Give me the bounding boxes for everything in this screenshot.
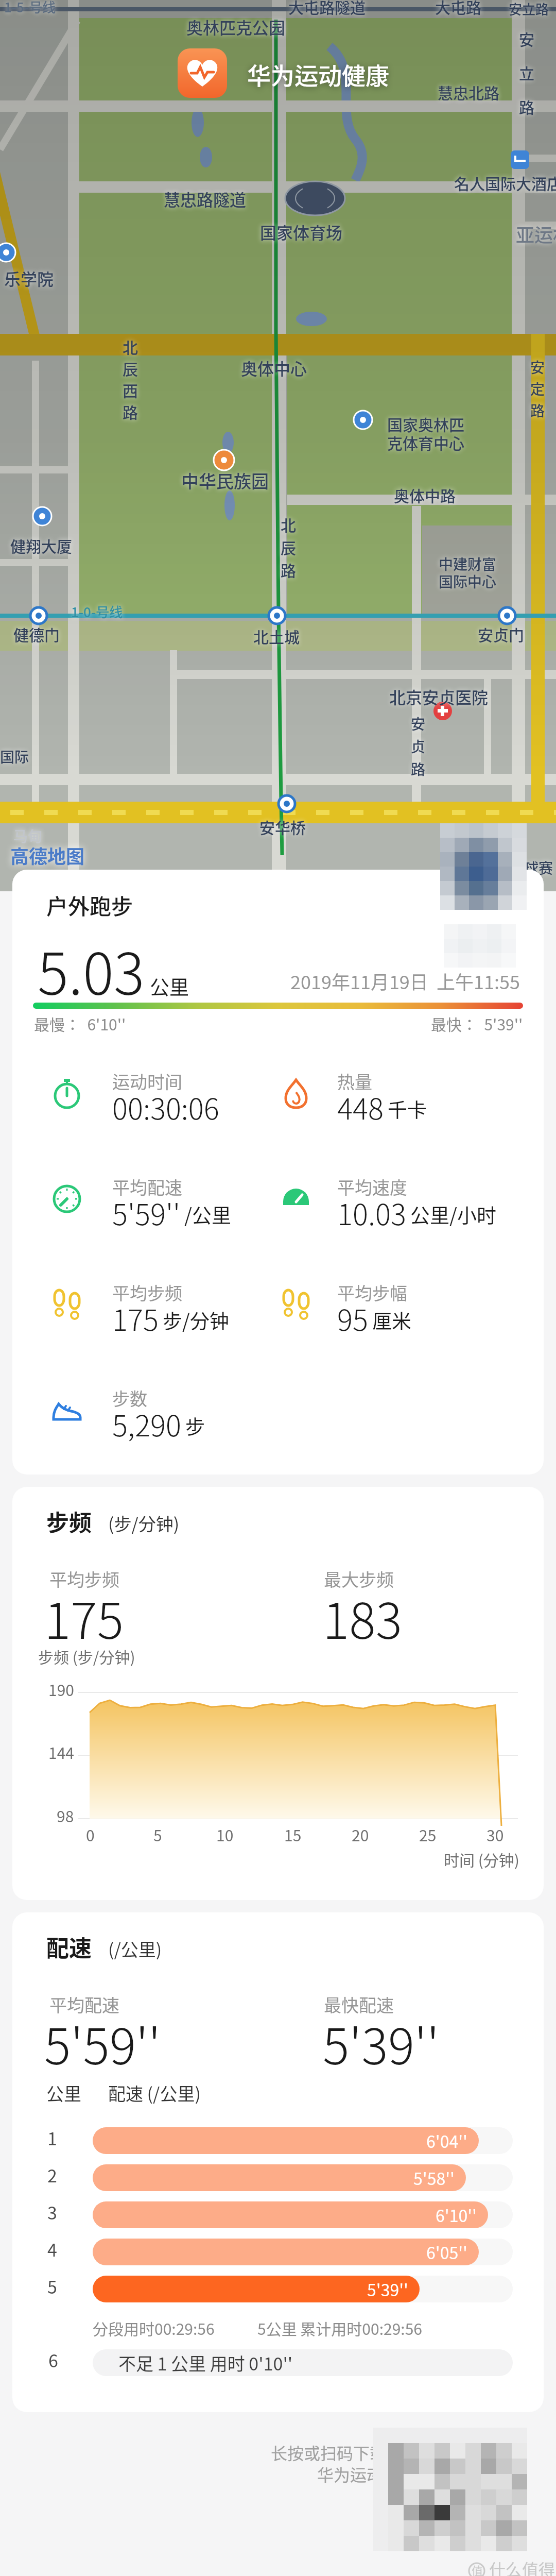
staticText: 平均步频	[112, 1280, 182, 1305]
staticText: 北	[281, 513, 296, 535]
staticText: 144	[48, 1741, 74, 1763]
staticText: 步频 (步/分钟)	[38, 1645, 135, 1667]
button[interactable]	[440, 823, 527, 910]
staticText: 最慢： 6'10''	[34, 1012, 126, 1035]
staticText: 4	[47, 2236, 57, 2262]
staticText: 名人国际大酒店	[454, 172, 556, 194]
staticText: 安立路	[509, 0, 549, 19]
staticText: 球赛	[524, 857, 553, 878]
staticText: 6'04''	[426, 2129, 467, 2153]
staticText: 平均步频	[49, 1566, 119, 1591]
staticText: 安	[411, 713, 426, 734]
staticText: (/公里)	[108, 1936, 162, 1961]
staticText: 448	[337, 1086, 384, 1128]
staticText: 中建财富	[439, 553, 497, 574]
staticText: 健德门	[13, 623, 60, 645]
staticText: 华为运动	[317, 2462, 384, 2486]
button[interactable]: 6'04''	[93, 2127, 479, 2154]
staticText: 路	[281, 558, 296, 581]
staticText: 10.03	[337, 1192, 406, 1233]
staticText: 热量	[337, 1069, 372, 1094]
button[interactable]: 5'58''	[93, 2164, 466, 2191]
staticText: 步	[185, 1411, 205, 1439]
staticText: 奥体中路	[394, 484, 456, 506]
staticText: 3	[47, 2199, 57, 2225]
staticText: 分段用时00:29:56	[93, 2317, 215, 2339]
staticText: 5	[47, 2274, 57, 2299]
staticText: 平均配速	[112, 1174, 182, 1199]
button[interactable]	[178, 48, 227, 98]
staticText: /公里	[184, 1200, 231, 1228]
staticText: 大屯路	[435, 0, 481, 18]
staticText: 安华桥	[259, 816, 306, 838]
button[interactable]: 5'39''	[93, 2276, 420, 2302]
staticText: 大屯路隧道	[288, 0, 366, 18]
staticText: 奥体中心	[241, 356, 307, 380]
staticText: 5.03	[38, 928, 145, 1011]
staticText: 95	[337, 1297, 368, 1339]
staticText: 西	[123, 379, 138, 401]
staticText: 6	[48, 2347, 58, 2372]
staticText: 安	[530, 357, 545, 378]
staticText: 步频	[46, 1505, 92, 1538]
staticText: 平均配速	[49, 1992, 119, 2017]
staticText: 亚运村	[516, 221, 556, 247]
staticText: 190	[48, 1678, 74, 1700]
staticText: 北	[123, 335, 138, 358]
staticText: 5'59''	[44, 2007, 161, 2079]
staticText: 运动时间	[112, 1069, 182, 1094]
staticText: 时间 (分钟)	[444, 1848, 519, 1870]
staticText: 国家体育场	[260, 220, 343, 244]
staticText: 国际	[0, 746, 29, 767]
staticText: 5'58''	[413, 2166, 455, 2190]
staticText: 2	[47, 2162, 57, 2188]
staticText: 1	[47, 2125, 57, 2150]
staticText: 公里/小时	[410, 1200, 496, 1228]
staticText: 175	[112, 1297, 159, 1339]
staticText: 安	[519, 27, 534, 49]
staticText: 6'05''	[426, 2240, 467, 2264]
staticText: 贞	[411, 736, 426, 757]
staticText: 183	[323, 1582, 403, 1653]
staticText: 国际中心	[439, 571, 497, 592]
staticText: 辰	[123, 357, 138, 379]
staticText: 5	[153, 1823, 162, 1845]
staticText: 长按或扫码下载	[271, 2441, 387, 2464]
staticText: 20	[352, 1823, 369, 1845]
staticText: 00:30:06	[112, 1086, 219, 1128]
staticText: 克体育中心	[387, 431, 464, 453]
staticText: 配速	[46, 1930, 92, 1963]
staticText: 千卡	[388, 1094, 427, 1123]
staticText: 北京安贞医院	[389, 685, 489, 708]
staticText: 中华民族园	[181, 468, 269, 493]
staticText: 步数	[112, 1385, 147, 1411]
staticText: 配速 (/公里)	[108, 2080, 201, 2106]
staticText: 路	[519, 95, 534, 117]
staticText: 步/分钟	[163, 1306, 229, 1334]
staticText: 公里	[150, 972, 189, 1000]
staticText: 慧忠北路	[438, 81, 499, 103]
staticText: 10	[216, 1823, 234, 1845]
staticText: 5,290	[112, 1403, 181, 1445]
button[interactable]: 6'05''	[93, 2239, 479, 2265]
staticText: 路	[411, 758, 426, 779]
staticText: 1-5-号线	[4, 0, 56, 16]
staticText: 奥林匹克公园	[186, 15, 286, 39]
staticText: 国家奥林匹	[387, 413, 464, 435]
staticText: 最快： 5'39''	[431, 1012, 523, 1035]
staticText: 定	[530, 378, 545, 399]
staticText: 厘米	[372, 1306, 412, 1334]
staticText: 5公里 累计用时00:29:56	[257, 2317, 422, 2339]
staticText: 不足 1 公里 用时 0'10''	[118, 2350, 293, 2376]
staticText: 辰	[281, 536, 296, 558]
staticText: 5'39''	[323, 2007, 440, 2079]
staticText: 6'10''	[436, 2203, 477, 2227]
staticText: 高德地图	[10, 842, 85, 869]
staticText: 最快配速	[324, 1992, 394, 2017]
staticText: 98	[57, 1804, 74, 1826]
staticText: 平均步幅	[337, 1280, 407, 1305]
staticText: 立	[519, 61, 534, 83]
staticText: 0	[86, 1823, 95, 1845]
staticText: 乐学院	[4, 266, 54, 290]
button[interactable]: 6'10''	[93, 2201, 488, 2228]
